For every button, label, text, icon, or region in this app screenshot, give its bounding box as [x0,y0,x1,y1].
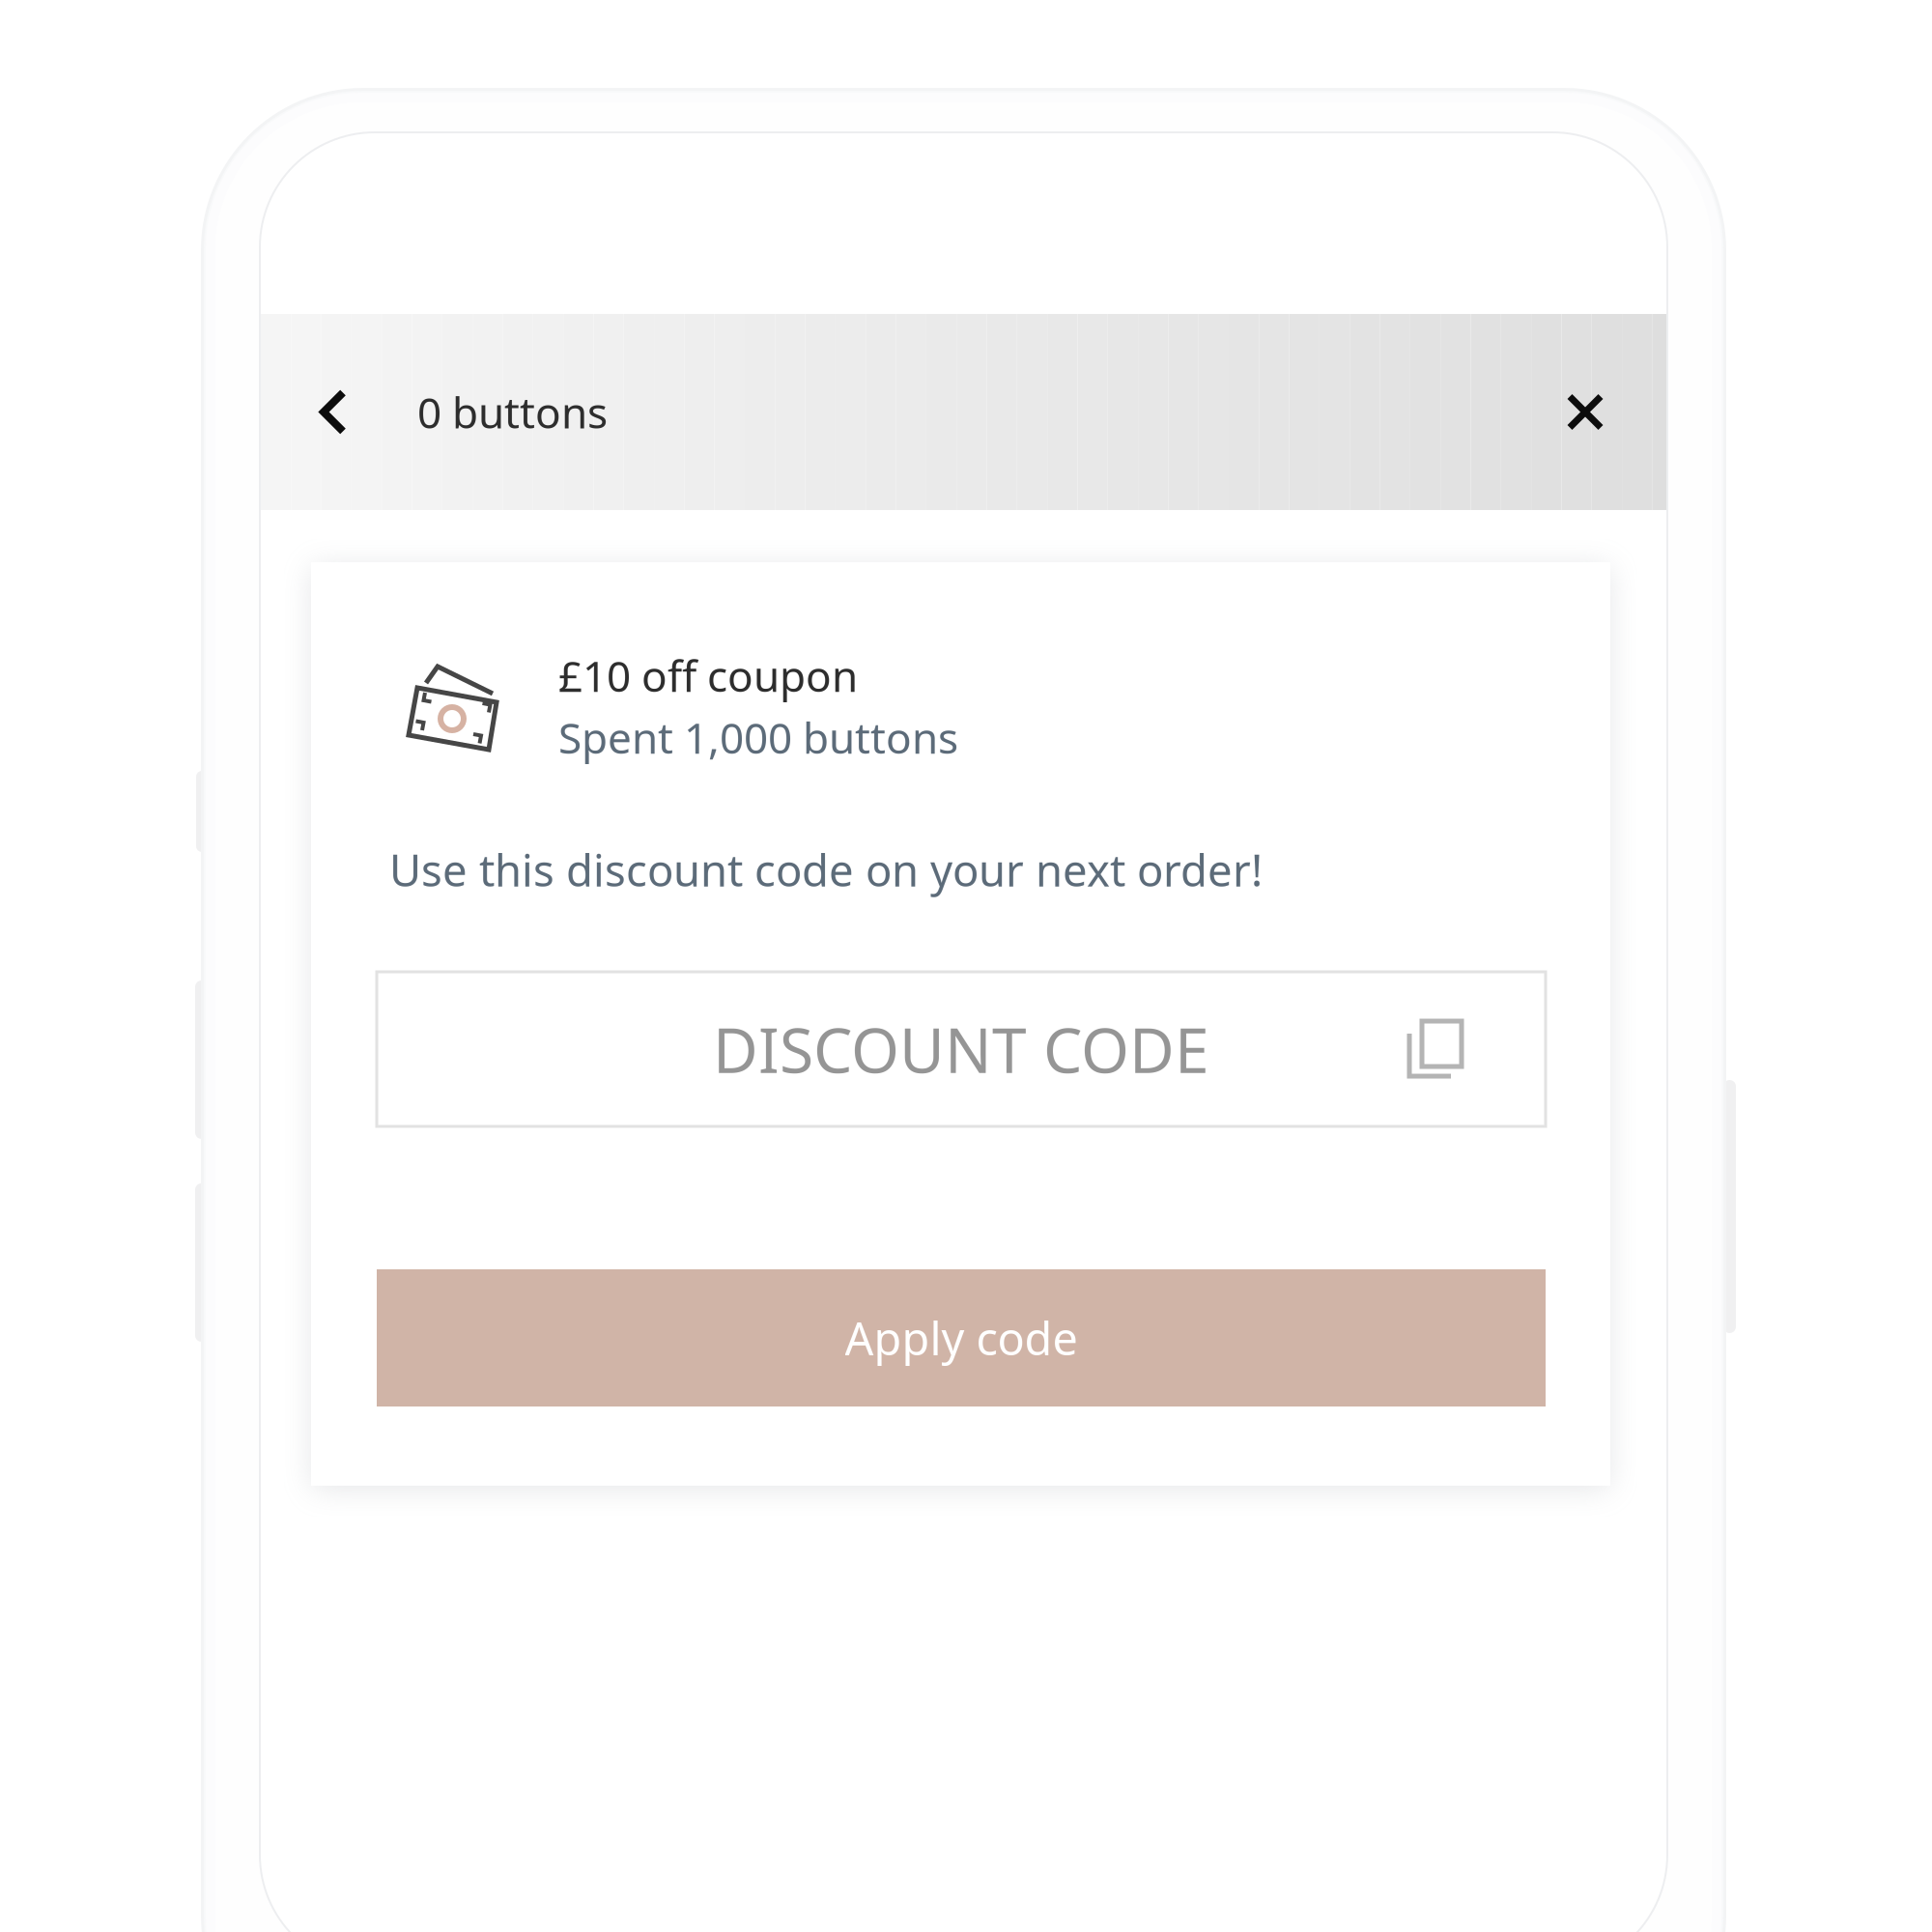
button[interactable]: DISCOUNT CODE [377,972,1546,1126]
button[interactable]: Apply code [377,1269,1546,1406]
staticText: DISCOUNT CODE [713,1008,1209,1090]
staticText: Spent 1,000 buttons [558,709,958,765]
staticText: 0 buttons [417,384,608,440]
staticText: Use this discount code on your next orde… [389,840,1263,899]
staticText: £10 off coupon [558,647,858,704]
button[interactable]: Back [260,314,407,510]
staticText: Apply code [845,1308,1078,1368]
button[interactable]: Close [1512,314,1659,510]
